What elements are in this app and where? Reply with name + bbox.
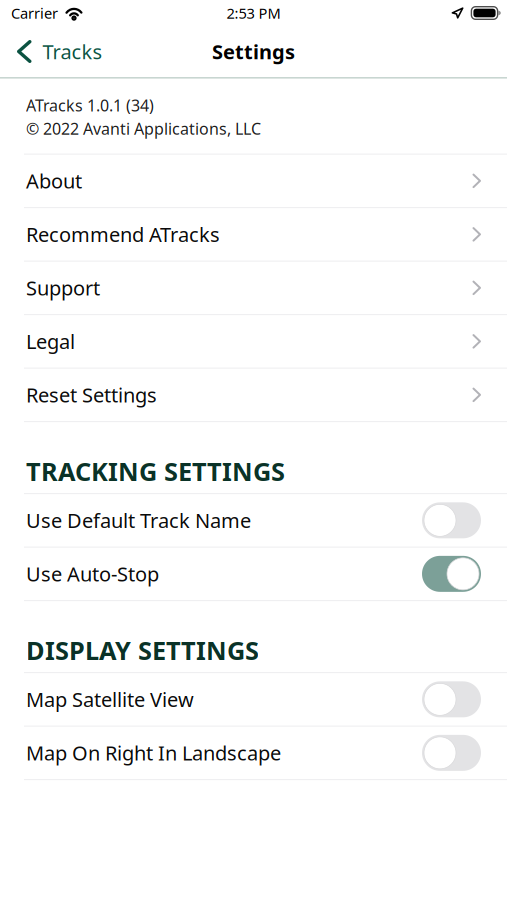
staticText: About (26, 168, 82, 194)
button[interactable]: Recommend ATracks (0, 208, 507, 262)
button[interactable]: Tracks (0, 26, 114, 77)
staticText: Recommend ATracks (26, 221, 220, 248)
button[interactable]: About (0, 155, 507, 208)
button[interactable]: Reset Settings (0, 369, 507, 422)
button[interactable]: Use Auto-Stop (0, 548, 507, 601)
button[interactable]: Map On Right In Landscape (0, 727, 507, 780)
button[interactable]: Use Default Track Name (0, 494, 507, 548)
staticText: Support (26, 275, 100, 301)
staticText: Carrier (11, 3, 58, 23)
staticText: Reset Settings (26, 382, 157, 408)
staticText: ATracks 1.0.1 (34) (26, 95, 154, 116)
button[interactable]: Map Satellite View (0, 673, 507, 727)
button[interactable]: Legal (0, 315, 507, 369)
button[interactable]: Support (0, 262, 507, 315)
staticText: © 2022 Avanti Applications, LLC (26, 118, 261, 139)
staticText: 2:53 PM (226, 3, 280, 23)
staticText: Map Satellite View (26, 686, 194, 713)
staticText: Use Auto-Stop (26, 561, 159, 587)
staticText: DISPLAY SETTINGS (26, 633, 259, 667)
staticText: Settings (212, 38, 295, 65)
staticText: Map On Right In Landscape (26, 740, 281, 766)
staticText: Legal (26, 328, 75, 355)
staticText: Use Default Track Name (26, 507, 251, 534)
staticText: Tracks (42, 38, 102, 65)
staticText: TRACKING SETTINGS (26, 454, 285, 488)
